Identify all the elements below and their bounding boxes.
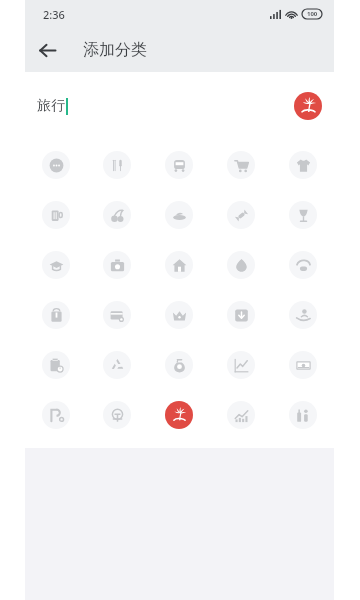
button[interactable]: Category icon 3 [227, 151, 255, 179]
button[interactable]: Category icon 2 [165, 151, 193, 179]
button[interactable]: Category icon 28 [227, 401, 255, 429]
button[interactable]: Category icon 5 [42, 201, 70, 229]
button[interactable]: Category icon 21 [103, 351, 131, 379]
button[interactable]: Category icon 18 [227, 301, 255, 329]
button[interactable]: Category icon 4 [289, 151, 317, 179]
button[interactable]: Category icon 0 [42, 151, 70, 179]
button[interactable]: Category icon 19 [289, 301, 317, 329]
button[interactable]: Category icon 7 [165, 201, 193, 229]
staticText: 2:36 [43, 7, 65, 22]
button[interactable]: Category icon 12 [165, 251, 193, 279]
button[interactable]: Category icon 8 [227, 201, 255, 229]
button[interactable]: Category icon 25 [42, 401, 70, 429]
button[interactable]: Category icon 23 [227, 351, 255, 379]
button[interactable]: Selected category icon [294, 92, 322, 120]
button[interactable]: Category icon 29 [289, 401, 317, 429]
staticText: 添加分类 [83, 40, 147, 60]
button[interactable]: Category icon 22 [165, 351, 193, 379]
button[interactable]: Category icon 15 [42, 301, 70, 329]
button[interactable]: Category icon 24 [289, 351, 317, 379]
button[interactable]: Category icon 14 [289, 251, 317, 279]
button[interactable]: Category icon 1 [103, 151, 131, 179]
button[interactable]: Category icon 27 [165, 401, 193, 429]
button[interactable]: Category icon 9 [289, 201, 317, 229]
button[interactable]: Category icon 26 [103, 401, 131, 429]
button[interactable]: Category icon 17 [165, 301, 193, 329]
button[interactable]: Back [25, 28, 69, 72]
button[interactable]: Category icon 11 [103, 251, 131, 279]
button[interactable]: Category icon 20 [42, 351, 70, 379]
staticText: 旅行 [37, 97, 65, 115]
button[interactable]: Category icon 13 [227, 251, 255, 279]
button[interactable]: Category icon 10 [42, 251, 70, 279]
staticText: 100 [307, 10, 318, 18]
button[interactable]: Category icon 16 [103, 301, 131, 329]
button[interactable]: Category icon 6 [103, 201, 131, 229]
